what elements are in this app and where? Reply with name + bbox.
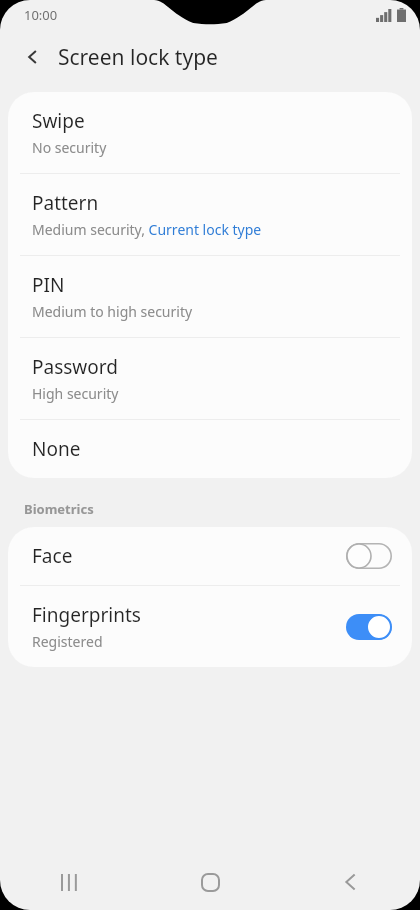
button[interactable]: Back: [12, 36, 54, 78]
staticText: Medium security, Current lock type: [32, 220, 262, 239]
staticText: Face: [32, 543, 73, 569]
button[interactable]: Fingerprints: [8, 586, 412, 667]
staticText: Fingerprints: [32, 602, 141, 628]
button[interactable]: PIN: [8, 256, 412, 337]
button[interactable]: On: [346, 614, 392, 640]
button[interactable]: Password: [8, 338, 412, 419]
button[interactable]: Face: [8, 527, 412, 585]
staticText: No security: [32, 138, 107, 157]
staticText: High security: [32, 384, 119, 403]
staticText: 10:00: [24, 6, 58, 24]
button[interactable]: Recents: [0, 854, 140, 910]
staticText: Password: [32, 354, 118, 380]
button[interactable]: Swipe: [8, 92, 412, 173]
button[interactable]: Pattern: [8, 174, 412, 255]
staticText: Medium to high security: [32, 302, 193, 321]
staticText: Swipe: [32, 108, 85, 134]
button[interactable]: Off: [346, 543, 392, 569]
button[interactable]: Home: [140, 854, 280, 910]
staticText: Biometrics: [24, 500, 94, 518]
staticText: Registered: [32, 632, 103, 651]
button[interactable]: None: [8, 420, 412, 478]
button[interactable]: Back: [280, 854, 420, 910]
staticText: None: [32, 436, 81, 462]
staticText: Screen lock type: [58, 43, 218, 72]
staticText: PIN: [32, 272, 65, 298]
staticText: Pattern: [32, 190, 99, 216]
